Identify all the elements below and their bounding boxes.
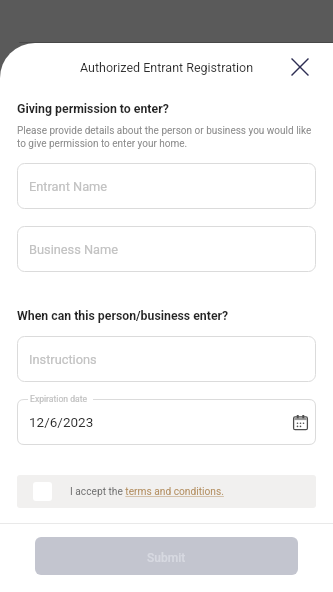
staticText: Entrant Name xyxy=(29,179,108,194)
staticText: Business Name xyxy=(29,242,119,257)
button[interactable]: Entrant Name xyxy=(17,163,316,209)
button[interactable]: I accept the terms and conditions. xyxy=(17,475,316,508)
staticText: Instructions xyxy=(29,352,97,367)
button[interactable]: Expiration date xyxy=(17,399,316,445)
staticText: Expiration date xyxy=(30,394,88,404)
button[interactable]: Business Name xyxy=(17,226,316,272)
button[interactable]: Submit xyxy=(35,537,298,575)
staticText: Submit xyxy=(147,551,186,565)
staticText: I accept the terms and conditions. xyxy=(70,486,224,498)
button[interactable]: Select expiration date xyxy=(290,412,310,432)
staticText: Please provide details about the person … xyxy=(17,125,316,150)
staticText: Authorized Entrant Registration xyxy=(80,60,254,75)
staticText: 12/6/2023 xyxy=(29,414,94,430)
staticText: Giving permission to enter? xyxy=(17,102,169,116)
staticText: When can this person/business enter? xyxy=(17,309,229,323)
button[interactable]: Close xyxy=(288,55,312,79)
button[interactable]: Instructions xyxy=(17,336,316,382)
